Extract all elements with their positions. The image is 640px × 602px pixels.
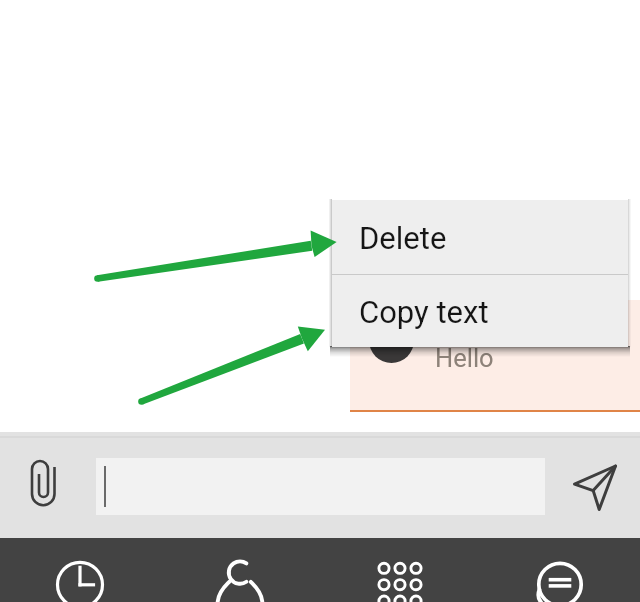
button[interactable]: Contacts	[160, 538, 320, 602]
button[interactable]: Hello	[350, 300, 640, 412]
staticText: Delete	[359, 220, 447, 256]
button[interactable]: Delete	[332, 200, 628, 274]
staticText: Copy text	[359, 294, 489, 330]
button[interactable]	[96, 458, 545, 515]
button[interactable]: Send	[572, 464, 618, 510]
button[interactable]: Recent	[0, 538, 160, 602]
button[interactable]: Copy text	[332, 275, 628, 347]
button[interactable]: Attach file	[24, 457, 64, 497]
button[interactable]: Keypad	[320, 538, 480, 602]
staticText: Hello	[435, 343, 494, 373]
button[interactable]: Messages	[480, 538, 640, 602]
